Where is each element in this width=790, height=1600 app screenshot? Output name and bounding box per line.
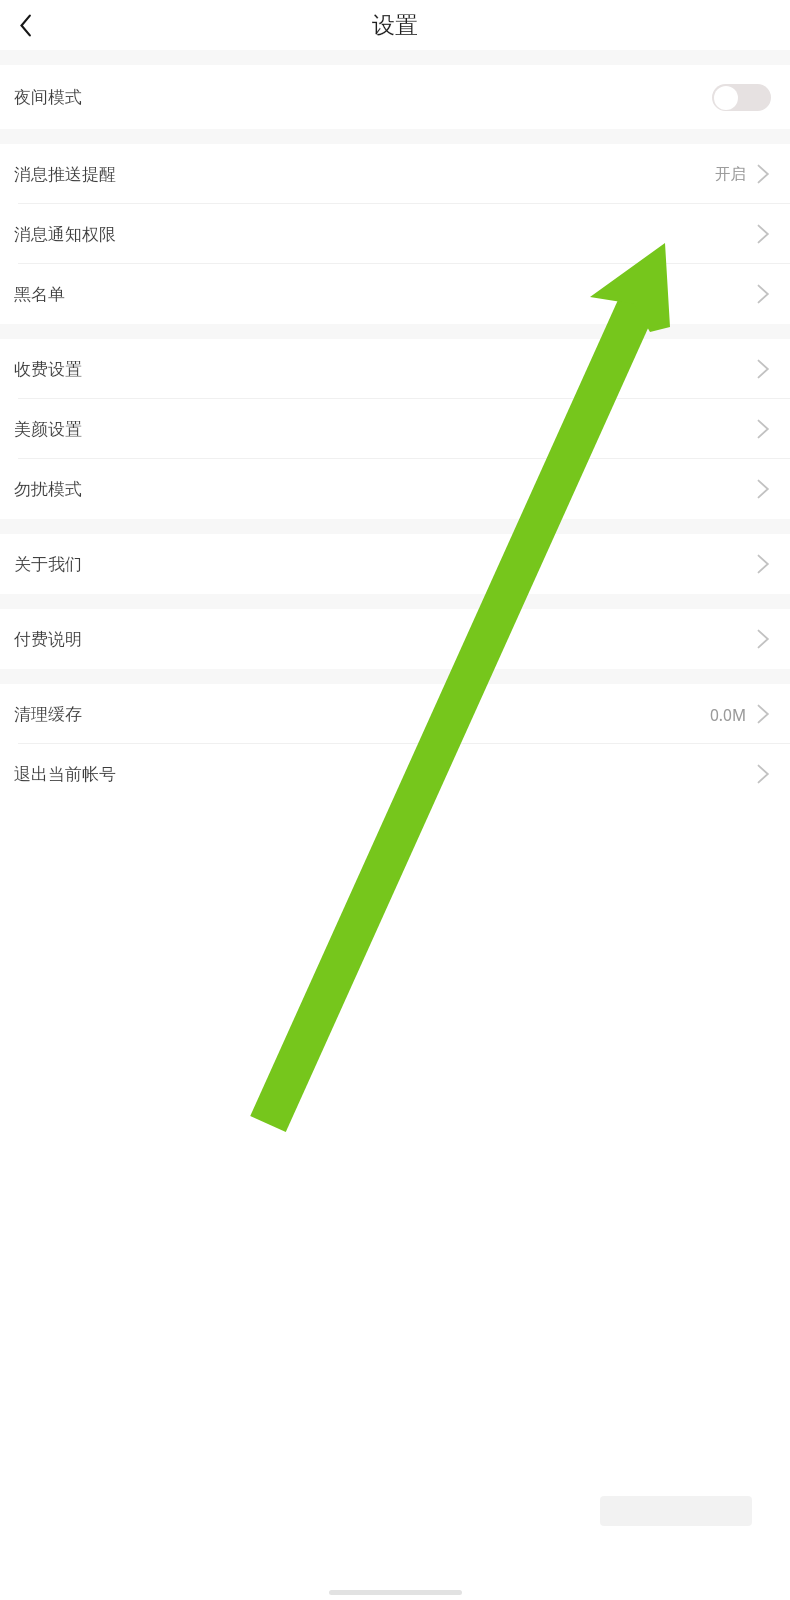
- button[interactable]: 收费设置: [0, 339, 790, 399]
- button[interactable]: 清理缓存: [0, 684, 790, 744]
- staticText: 收费设置: [14, 359, 82, 380]
- button[interactable]: 退出当前帐号: [0, 744, 790, 804]
- staticText: 开启: [715, 164, 746, 184]
- button[interactable]: 黑名单: [0, 264, 790, 324]
- button[interactable]: Back: [0, 0, 52, 50]
- button[interactable]: 消息推送提醒: [0, 144, 790, 204]
- staticText: 消息推送提醒: [14, 164, 116, 185]
- button[interactable]: 付费说明: [0, 609, 790, 669]
- button[interactable]: 关于我们: [0, 534, 790, 594]
- button[interactable]: 勿扰模式: [0, 459, 790, 519]
- staticText: 黑名单: [14, 284, 65, 305]
- staticText: 设置: [372, 11, 418, 40]
- staticText: 美颜设置: [14, 419, 82, 440]
- staticText: 夜间模式: [14, 87, 82, 108]
- staticText: 关于我们: [14, 554, 82, 575]
- staticText: 付费说明: [14, 629, 82, 650]
- staticText: 消息通知权限: [14, 224, 116, 245]
- staticText: 退出当前帐号: [14, 764, 116, 785]
- staticText: 0.0M: [710, 704, 746, 725]
- staticText: 清理缓存: [14, 704, 82, 725]
- staticText: 勿扰模式: [14, 479, 82, 500]
- button[interactable]: 夜间模式: [712, 84, 771, 111]
- button[interactable]: 夜间模式: [0, 65, 790, 129]
- button[interactable]: 消息通知权限: [0, 204, 790, 264]
- button[interactable]: 美颜设置: [0, 399, 790, 459]
